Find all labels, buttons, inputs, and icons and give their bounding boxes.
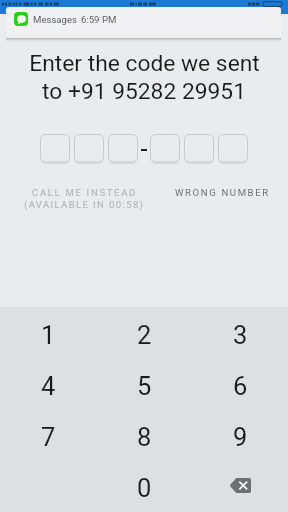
staticText: 7 — [41, 422, 56, 452]
staticText: Messages — [33, 14, 78, 25]
button[interactable]: Backspace — [192, 460, 288, 511]
staticText: 9 — [233, 422, 248, 452]
button[interactable] — [40, 134, 70, 165]
other: Backspace — [230, 478, 251, 493]
button[interactable] — [74, 134, 104, 165]
staticText: 5 — [137, 371, 152, 401]
staticText: (AVAILABLE IN 00:58) — [24, 199, 145, 210]
staticText: 6 — [233, 371, 248, 401]
button[interactable] — [108, 134, 138, 165]
button[interactable] — [218, 134, 248, 165]
button[interactable] — [150, 134, 180, 165]
staticText: CALL ME INSTEAD — [32, 187, 138, 198]
button[interactable] — [184, 134, 214, 165]
staticText: 8 — [137, 422, 152, 452]
button[interactable]: 7 — [0, 409, 96, 460]
button[interactable]: 0 — [96, 460, 192, 511]
button[interactable]: Messages — [6, 7, 281, 38]
staticText: 6:59 PM — [81, 14, 117, 25]
staticText: 0 — [137, 473, 152, 503]
button[interactable]: 3 — [192, 307, 288, 358]
staticText: 2 — [137, 320, 152, 350]
staticText: to +91 95282 29951 — [42, 78, 246, 105]
button[interactable]: 4 — [0, 358, 96, 409]
staticText: Enter the code we sent — [29, 50, 260, 77]
button[interactable]: 6 — [192, 358, 288, 409]
button[interactable]: WRONG NUMBER — [175, 187, 270, 198]
staticText: 4 — [41, 371, 56, 401]
button[interactable]: 9 — [192, 409, 288, 460]
button[interactable]: 5 — [96, 358, 192, 409]
staticText: 1 — [41, 320, 56, 350]
staticText: WRONG NUMBER — [175, 187, 270, 198]
button[interactable]: 8 — [96, 409, 192, 460]
staticText: 3 — [233, 320, 248, 350]
button[interactable]: 1 — [0, 307, 96, 358]
button[interactable]: 2 — [96, 307, 192, 358]
button[interactable]: CALL ME INSTEAD — [24, 187, 145, 210]
